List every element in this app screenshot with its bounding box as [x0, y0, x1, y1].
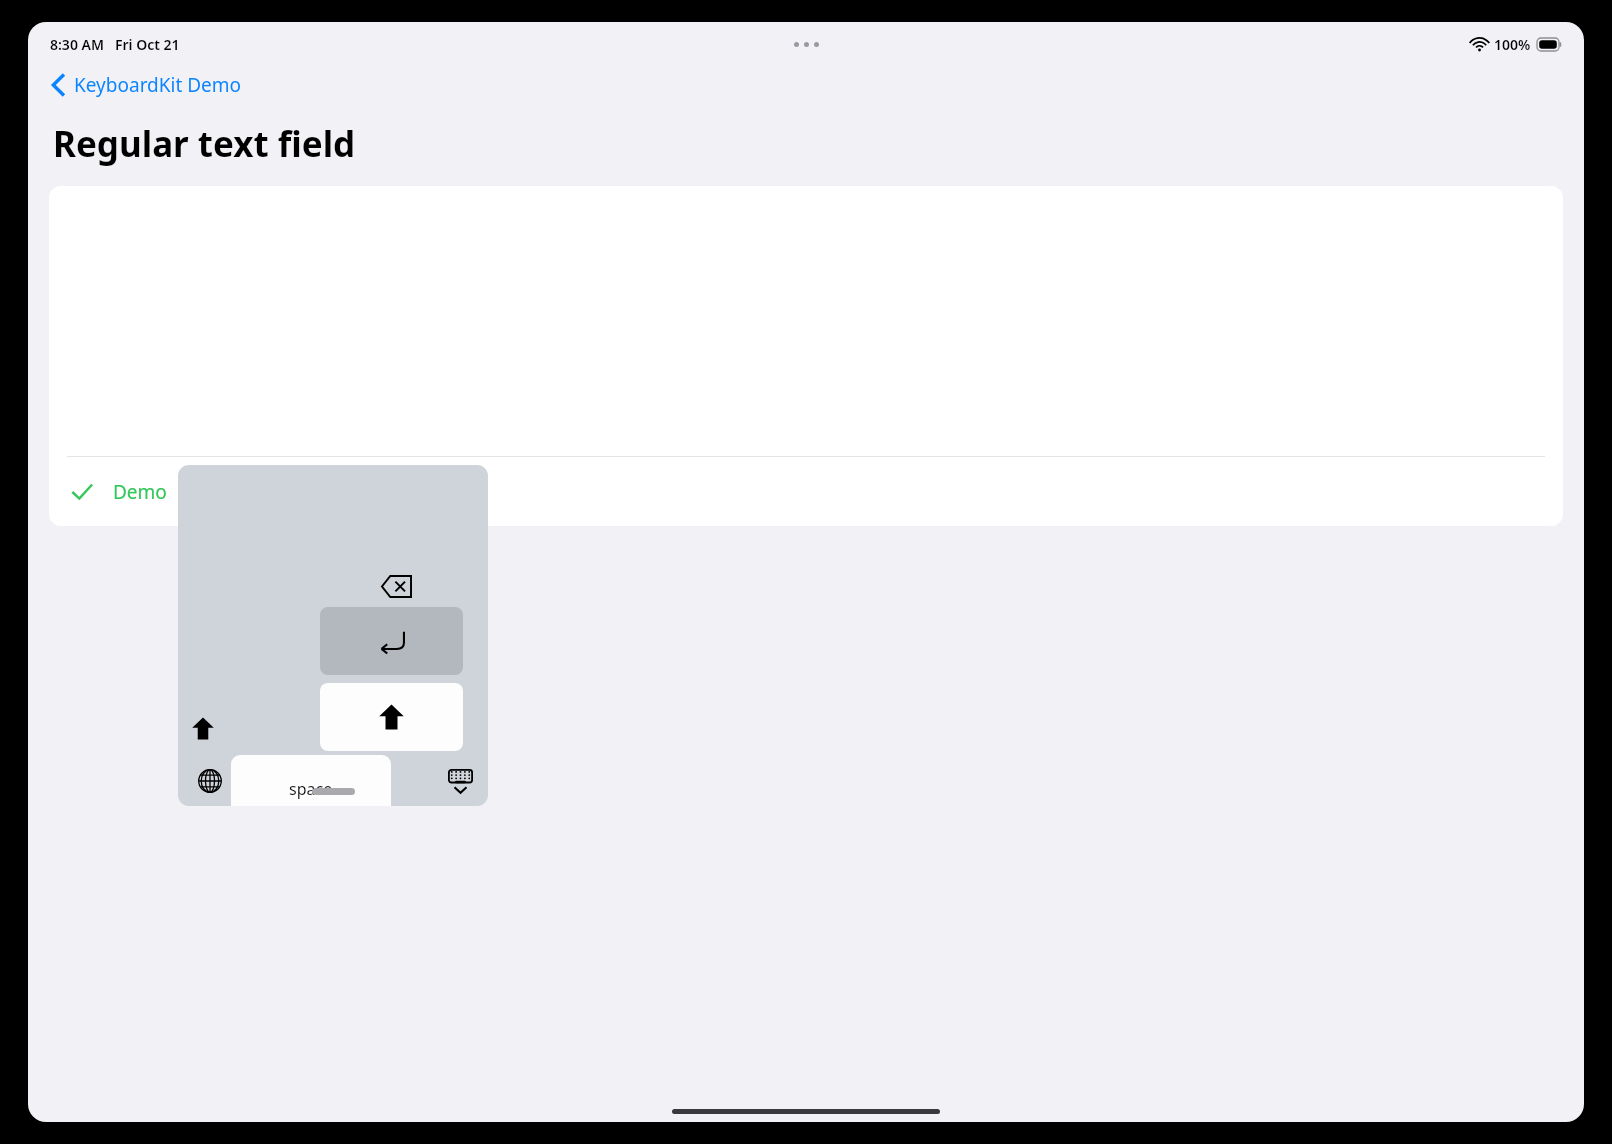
staticText: Regular text field [53, 120, 356, 168]
button[interactable]: Dismiss keyboard [440, 761, 480, 801]
button[interactable]: Backspace [368, 563, 424, 609]
staticText: 8:30 AM [50, 35, 104, 54]
staticText: Demo [113, 479, 167, 505]
button[interactable]: Shift [320, 683, 463, 751]
staticText: KeyboardKit Demo [74, 72, 242, 98]
staticText: 100% [1494, 35, 1531, 54]
button[interactable]: Next keyboard [189, 760, 231, 802]
button[interactable]: Shift [183, 708, 223, 748]
staticText: space [289, 778, 333, 800]
button[interactable]: Move keyboard [312, 788, 355, 795]
button[interactable]: Return [320, 607, 463, 675]
button[interactable]: KeyboardKit Demo [46, 68, 248, 102]
button[interactable]: space [231, 755, 391, 806]
staticText: Fri Oct 21 [115, 35, 180, 54]
button[interactable]: Demo [49, 457, 1563, 526]
